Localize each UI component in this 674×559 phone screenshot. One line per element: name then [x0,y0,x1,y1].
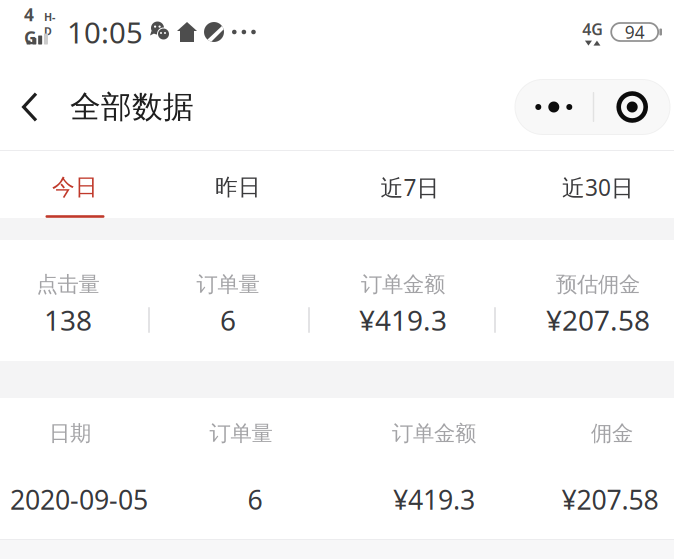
staticText: ¥207.58 [561,482,658,517]
staticText: ¥207.58 [546,301,650,339]
staticText: 4G [582,18,603,40]
staticText: 今日 [52,173,98,201]
staticText: 订单金额 [392,420,476,447]
staticText: ¥419.3 [393,482,475,517]
staticText: 2020-09-05 [10,482,148,517]
staticText: 点击量 [36,271,99,298]
button[interactable]: 2020-09-05 [0,460,674,539]
staticText: 6 [247,482,262,517]
button[interactable]: 昨日 [0,176,674,218]
staticText: 近7日 [380,172,439,202]
staticText: 10:05 [67,12,143,51]
staticText: 昨日 [215,173,261,201]
staticText: ¥419.3 [359,301,447,339]
button[interactable]: More options and close [515,79,674,134]
staticText: 订单量 [196,271,259,298]
staticText: 94 [625,20,645,43]
button[interactable]: 近30日 [0,176,674,218]
staticText: HD [44,10,55,38]
button[interactable]: 近7日 [0,176,674,218]
button[interactable]: 全部数据 [54,76,218,138]
button[interactable]: 今日 [0,176,674,218]
button[interactable]: Back [0,78,54,136]
staticText: 订单量 [209,420,272,447]
staticText: 预估佣金 [556,271,640,298]
staticText: 日期 [49,420,91,447]
staticText: 近30日 [562,172,634,202]
staticText: 6 [220,301,236,339]
staticText: 订单金额 [361,271,445,298]
staticText: 全部数据 [70,88,194,126]
staticText: 佣金 [591,420,633,447]
staticText: 138 [44,301,92,339]
staticText: 4G [24,3,37,49]
